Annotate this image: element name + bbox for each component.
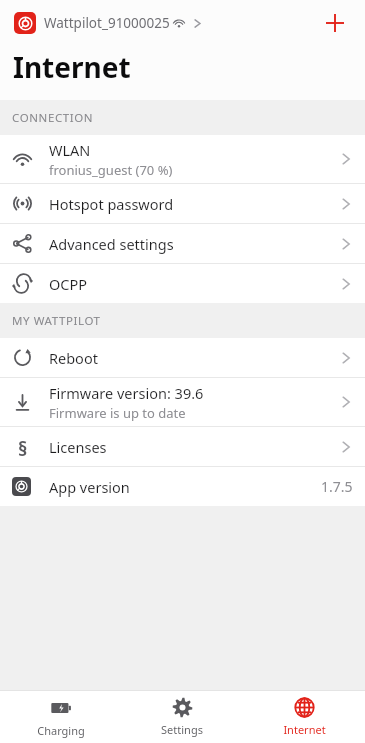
button[interactable]: Add device [317, 5, 353, 41]
staticText: Firmware version: 39.6 [49, 383, 204, 403]
staticText: Internet [283, 722, 326, 737]
button[interactable]: Reboot [0, 338, 365, 377]
staticText: Settings [161, 722, 203, 737]
staticText: Wattpilot_91000025 [44, 14, 170, 32]
button[interactable]: Settings [121, 691, 243, 743]
staticText: 1.7.5 [321, 477, 353, 496]
button[interactable]: OCPP [0, 264, 365, 303]
button[interactable]: App version [0, 467, 365, 506]
staticText: Reboot [49, 348, 98, 368]
button[interactable]: Hotspot password [0, 184, 365, 223]
staticText: CONNECTION [12, 110, 94, 126]
staticText: fronius_guest (70 %) [49, 161, 173, 179]
button[interactable]: § [0, 427, 365, 466]
staticText: WLAN [49, 140, 91, 160]
staticText: Advanced settings [49, 234, 174, 254]
staticText: Hotspot password [49, 194, 174, 214]
staticText: Firmware is up to date [49, 404, 186, 422]
staticText: MY WATTPILOT [12, 313, 101, 329]
button[interactable]: Wattpilot_91000025 [12, 8, 205, 38]
staticText: Charging [37, 723, 85, 738]
button[interactable]: Charging [0, 691, 121, 743]
button[interactable]: Advanced settings [0, 224, 365, 263]
button[interactable]: Internet [243, 691, 365, 743]
staticText: Internet [13, 48, 131, 86]
staticText: OCPP [49, 274, 88, 294]
button[interactable]: WLAN [0, 135, 365, 183]
staticText: § [18, 436, 28, 457]
staticText: Licenses [49, 437, 107, 457]
button[interactable]: Firmware version: 39.6 [0, 378, 365, 426]
staticText: App version [49, 477, 130, 497]
